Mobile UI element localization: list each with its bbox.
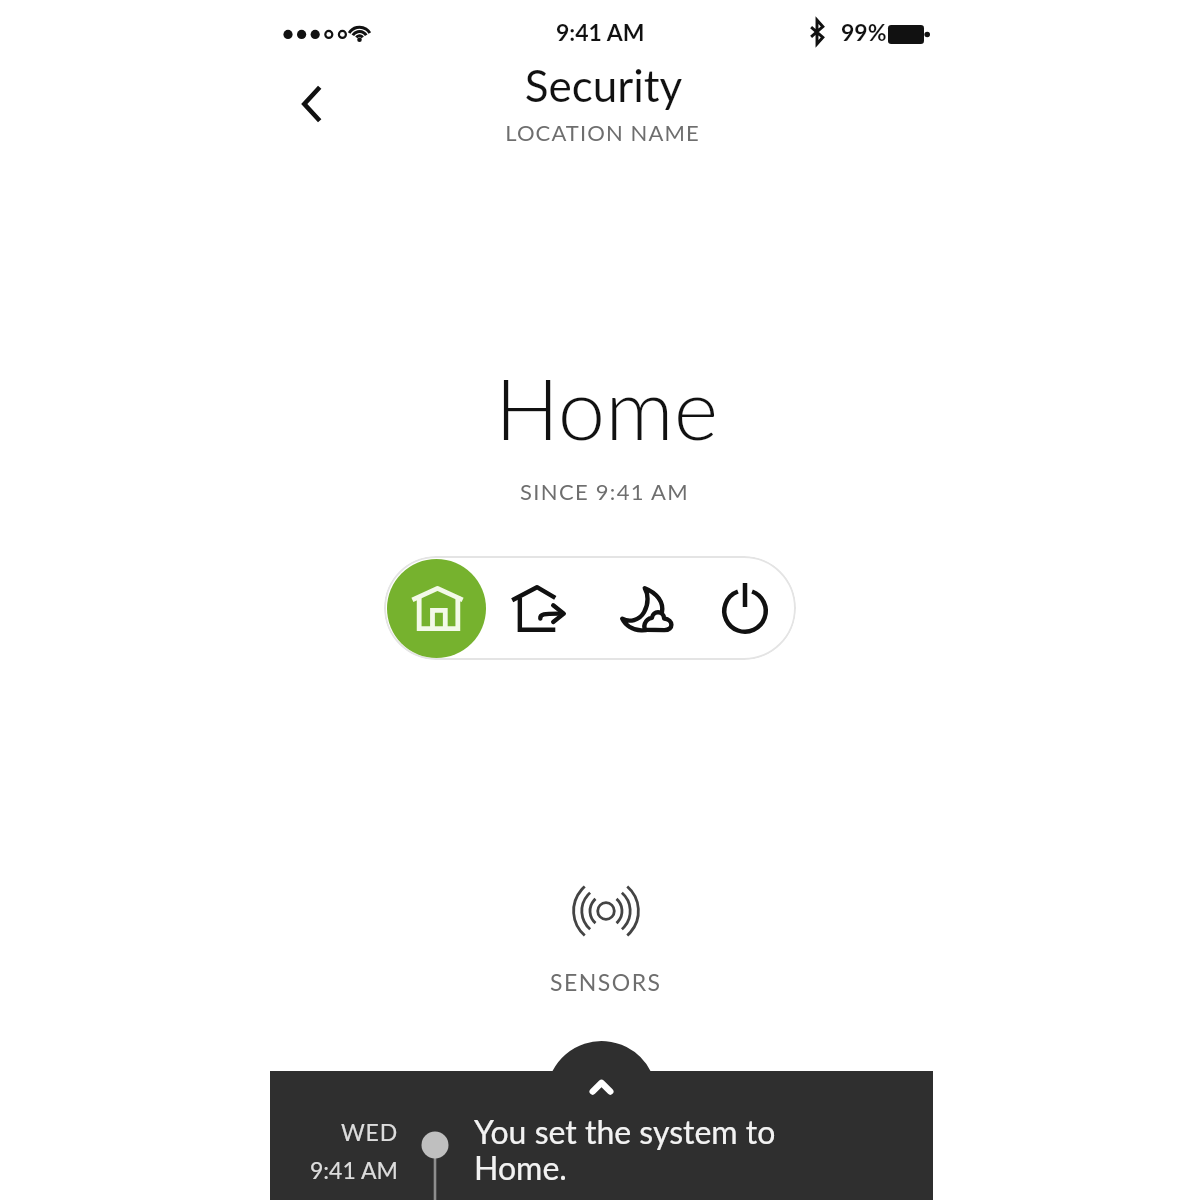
staticText: 9:41 AM	[310, 1156, 398, 1184]
button[interactable]: Turn off	[695, 559, 794, 658]
button[interactable]: Home mode	[387, 559, 486, 658]
staticText: 9:41 AM	[556, 18, 645, 46]
button[interactable]: Expand activity history	[553, 1041, 651, 1101]
staticText: 99%	[841, 18, 887, 46]
button[interactable]: SENSORS	[274, 884, 937, 996]
staticText: WED	[341, 1118, 398, 1146]
staticText: LOCATION NAME	[271, 119, 934, 145]
button[interactable]: Away mode	[488, 559, 587, 658]
staticText: SENSORS	[550, 968, 662, 996]
button[interactable]: You set the system to Home.	[462, 1103, 862, 1200]
staticText: Home	[275, 356, 938, 458]
button[interactable]: Back	[274, 64, 350, 146]
staticText: SINCE 9:41 AM	[273, 478, 936, 504]
button[interactable]: Night mode	[597, 559, 696, 658]
staticText: You set the system to Home.	[474, 1112, 776, 1187]
staticText: Security	[272, 59, 935, 112]
